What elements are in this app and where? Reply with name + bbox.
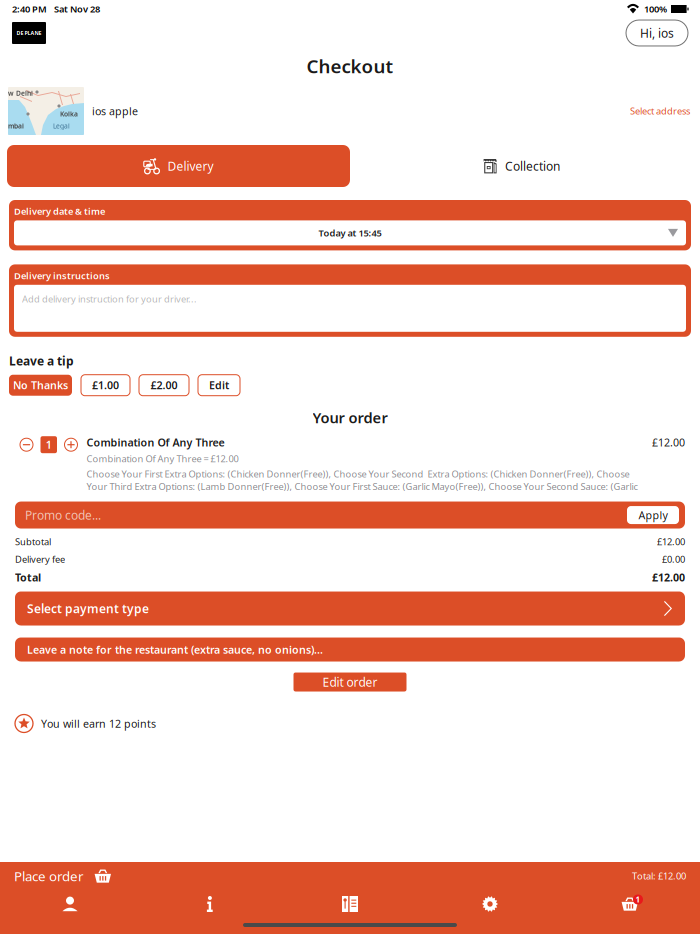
staticText: 2:40 PM [12, 3, 47, 15]
button[interactable]: Account [0, 890, 140, 918]
button[interactable]: Apply [627, 506, 679, 524]
button[interactable]: Today at 15:45 [14, 220, 686, 245]
button[interactable]: Info [140, 890, 280, 918]
staticText: Select payment type [27, 600, 149, 616]
staticText: Hi, ios [640, 25, 674, 41]
staticText: Today at 15:45 [318, 227, 381, 239]
staticText: Apply [638, 508, 667, 522]
staticText: Choose Your First Extra Options: (Chicke… [86, 468, 637, 493]
staticText: Subtotal [15, 535, 51, 548]
button[interactable]: Decrease quantity [20, 438, 33, 451]
button[interactable]: Delivery [7, 145, 350, 187]
button[interactable]: Basket [560, 890, 700, 918]
staticText: 1 [46, 438, 52, 452]
staticText: Edit [209, 378, 229, 392]
staticText: Combination Of Any Three [86, 435, 224, 449]
staticText: Total: £12.00 [632, 870, 686, 882]
staticText: Edit order [322, 674, 377, 690]
staticText: £1.00 [92, 378, 119, 392]
staticText: Select address [630, 105, 690, 117]
staticText: Delivery date & time [14, 205, 105, 217]
button[interactable]: Collection [350, 145, 693, 187]
staticText: Delivery instructions [14, 269, 110, 282]
staticText: Your order [312, 408, 387, 427]
button[interactable]: Place order [0, 862, 700, 890]
staticText: £12.00 [652, 570, 685, 584]
staticText: Place order [14, 867, 84, 885]
staticText: Promo code... [25, 507, 101, 523]
staticText: Total [15, 570, 41, 584]
button[interactable]: Hi, ios [626, 20, 688, 46]
staticText: £12.00 [657, 535, 685, 548]
button[interactable]: Edit [198, 375, 240, 396]
button[interactable]: Leave a note for the restaurant (extra s… [0, 625, 700, 661]
staticText: w Delhi [8, 89, 33, 98]
staticText: mbai [8, 121, 24, 130]
staticText: Collection [505, 158, 560, 174]
staticText: Delivery [167, 158, 213, 174]
staticText: Delivery fee [15, 553, 65, 565]
staticText: £0.00 [662, 553, 685, 565]
staticText: Kolka [60, 110, 78, 118]
staticText: Leave a tip [9, 353, 74, 369]
staticText: Combination Of Any Three = £12.00 [86, 452, 238, 465]
staticText: Checkout [306, 54, 393, 78]
button[interactable]: Settings [420, 890, 560, 918]
staticText: Add delivery instruction for your driver… [22, 293, 197, 305]
staticText: £2.00 [150, 378, 177, 392]
button[interactable]: No Thanks [9, 375, 72, 396]
staticText: Sat Nov 28 [54, 3, 100, 15]
button[interactable]: £2.00 [139, 375, 189, 396]
staticText: DE PLANE [16, 29, 41, 37]
button[interactable]: Increase quantity [64, 438, 77, 451]
staticText: 100% [644, 3, 667, 15]
button[interactable]: £1.00 [81, 375, 130, 396]
staticText: £12.00 [652, 435, 685, 449]
staticText: No Thanks [13, 378, 68, 392]
staticText: You will earn 12 points [41, 716, 156, 731]
staticText: Leave a note for the restaurant (extra s… [27, 642, 323, 657]
staticText: Legal [53, 121, 70, 130]
staticText: ios apple [92, 104, 138, 118]
button[interactable]: Edit order [293, 672, 406, 691]
button[interactable]: Select payment type [0, 584, 700, 625]
button[interactable]: Select address [628, 102, 692, 120]
button[interactable]: Menu [280, 890, 420, 918]
staticText: 1 [635, 894, 640, 905]
